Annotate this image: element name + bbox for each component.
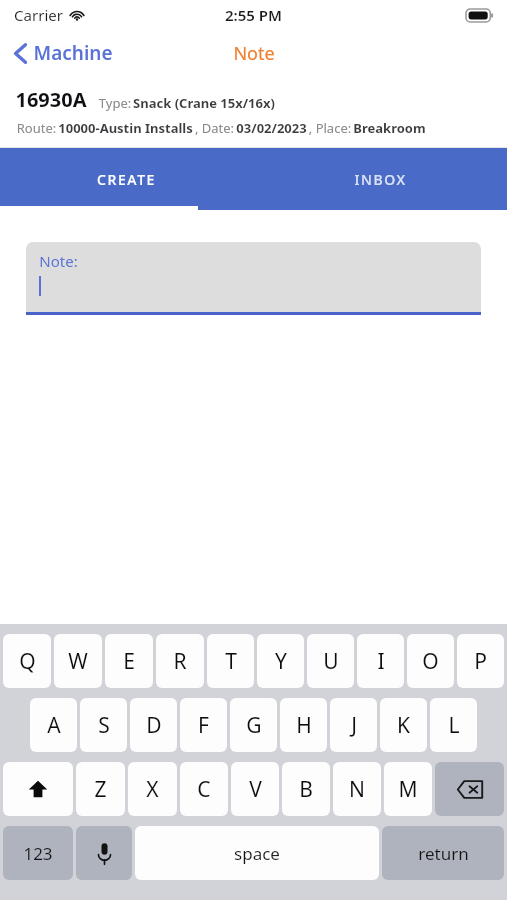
staticText: O bbox=[422, 647, 439, 676]
staticText: F bbox=[198, 711, 209, 740]
staticText: N bbox=[349, 775, 365, 804]
button[interactable]: U bbox=[307, 634, 354, 688]
staticText: B bbox=[299, 775, 313, 804]
button[interactable]: CREATE bbox=[0, 148, 253, 210]
button[interactable]: Dictation bbox=[76, 826, 132, 880]
staticText: U bbox=[323, 647, 339, 676]
button[interactable]: N bbox=[333, 762, 381, 816]
staticText: 123 bbox=[23, 842, 53, 865]
button[interactable]: Backspace bbox=[435, 762, 504, 816]
staticText: X bbox=[146, 775, 159, 804]
button[interactable]: O bbox=[407, 634, 454, 688]
button[interactable]: R bbox=[156, 634, 204, 688]
staticText: C bbox=[197, 775, 211, 804]
button[interactable]: space bbox=[135, 826, 379, 880]
staticText: 03/02/2023 bbox=[236, 119, 307, 137]
staticText: , Place: bbox=[307, 119, 353, 137]
button[interactable]: C bbox=[180, 762, 228, 816]
staticText: return bbox=[418, 842, 469, 865]
staticText: M bbox=[398, 775, 418, 804]
button[interactable]: J bbox=[330, 698, 377, 752]
staticText: 2:55 PM bbox=[225, 5, 282, 25]
staticText: Route: bbox=[15, 119, 58, 137]
button[interactable]: G bbox=[230, 698, 277, 752]
staticText: A bbox=[47, 711, 61, 740]
staticText: I bbox=[377, 647, 385, 676]
button[interactable]: INBOX bbox=[253, 148, 507, 210]
staticText: P bbox=[474, 647, 487, 676]
button[interactable]: return bbox=[382, 826, 504, 880]
staticText: Y bbox=[275, 647, 287, 676]
button[interactable]: Machine bbox=[0, 34, 125, 72]
staticText: Breakroom bbox=[353, 119, 426, 137]
button[interactable]: V bbox=[231, 762, 279, 816]
staticText: 16930A bbox=[15, 86, 87, 113]
button[interactable]: 123 bbox=[3, 826, 73, 880]
staticText: Carrier bbox=[14, 5, 63, 25]
staticText: R bbox=[173, 647, 187, 676]
staticText: L bbox=[448, 711, 460, 740]
staticText: INBOX bbox=[354, 170, 407, 189]
button[interactable]: I bbox=[357, 634, 404, 688]
staticText: H bbox=[296, 711, 312, 740]
staticText: K bbox=[397, 711, 410, 740]
staticText: E bbox=[123, 647, 135, 676]
staticText: CREATE bbox=[97, 170, 156, 189]
staticText: T bbox=[225, 647, 237, 676]
staticText: Machine bbox=[33, 40, 113, 66]
staticText: G bbox=[246, 711, 262, 740]
button[interactable]: B bbox=[282, 762, 330, 816]
staticText: Note: bbox=[39, 251, 78, 271]
button[interactable]: P bbox=[457, 634, 504, 688]
staticText: Z bbox=[94, 775, 107, 804]
button[interactable]: L bbox=[430, 698, 477, 752]
button[interactable]: W bbox=[54, 634, 102, 688]
button[interactable]: Z bbox=[76, 762, 125, 816]
button[interactable]: Note: bbox=[26, 242, 481, 312]
button[interactable]: S bbox=[80, 698, 127, 752]
button[interactable]: E bbox=[105, 634, 153, 688]
button[interactable]: Q bbox=[3, 634, 51, 688]
button[interactable]: D bbox=[130, 698, 177, 752]
staticText: Q bbox=[19, 647, 36, 676]
staticText: D bbox=[146, 711, 162, 740]
button[interactable]: A bbox=[30, 698, 77, 752]
button[interactable]: M bbox=[384, 762, 432, 816]
staticText: V bbox=[249, 775, 262, 804]
staticText: , Date: bbox=[193, 119, 236, 137]
button[interactable]: T bbox=[207, 634, 254, 688]
button[interactable]: H bbox=[280, 698, 327, 752]
staticText: 10000-Austin Installs bbox=[58, 119, 193, 137]
button[interactable]: Y bbox=[257, 634, 304, 688]
staticText: W bbox=[68, 647, 88, 676]
staticText: Type: bbox=[97, 94, 133, 112]
staticText: Note bbox=[233, 41, 275, 66]
button[interactable]: Shift bbox=[3, 762, 73, 816]
button[interactable]: K bbox=[380, 698, 427, 752]
staticText: S bbox=[98, 711, 110, 740]
button[interactable]: F bbox=[180, 698, 227, 752]
staticText: space bbox=[234, 842, 280, 865]
staticText: Snack (Crane 15x/16x) bbox=[133, 94, 275, 112]
staticText: J bbox=[351, 711, 357, 740]
button[interactable]: X bbox=[128, 762, 177, 816]
